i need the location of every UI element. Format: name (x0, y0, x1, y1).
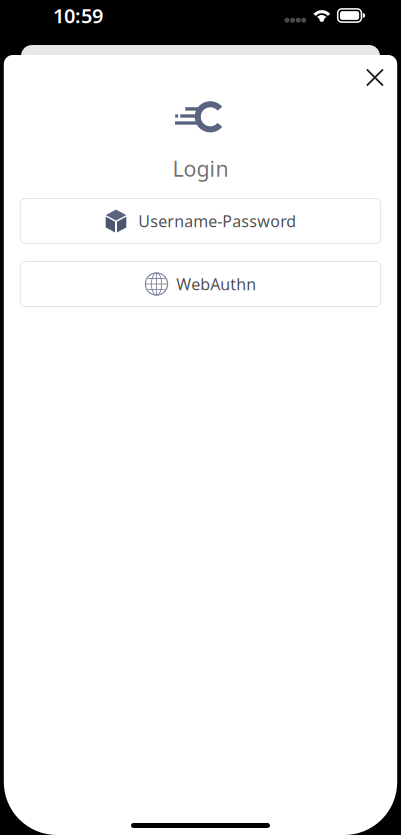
staticText: Login (172, 154, 228, 182)
button[interactable]: Username-Password (20, 198, 381, 243)
staticText: Username-Password (138, 210, 296, 232)
staticText: WebAuthn (176, 273, 256, 295)
button[interactable]: WebAuthn (20, 261, 381, 306)
button[interactable]: Close (357, 60, 393, 95)
staticText: 10:59 (53, 2, 103, 29)
